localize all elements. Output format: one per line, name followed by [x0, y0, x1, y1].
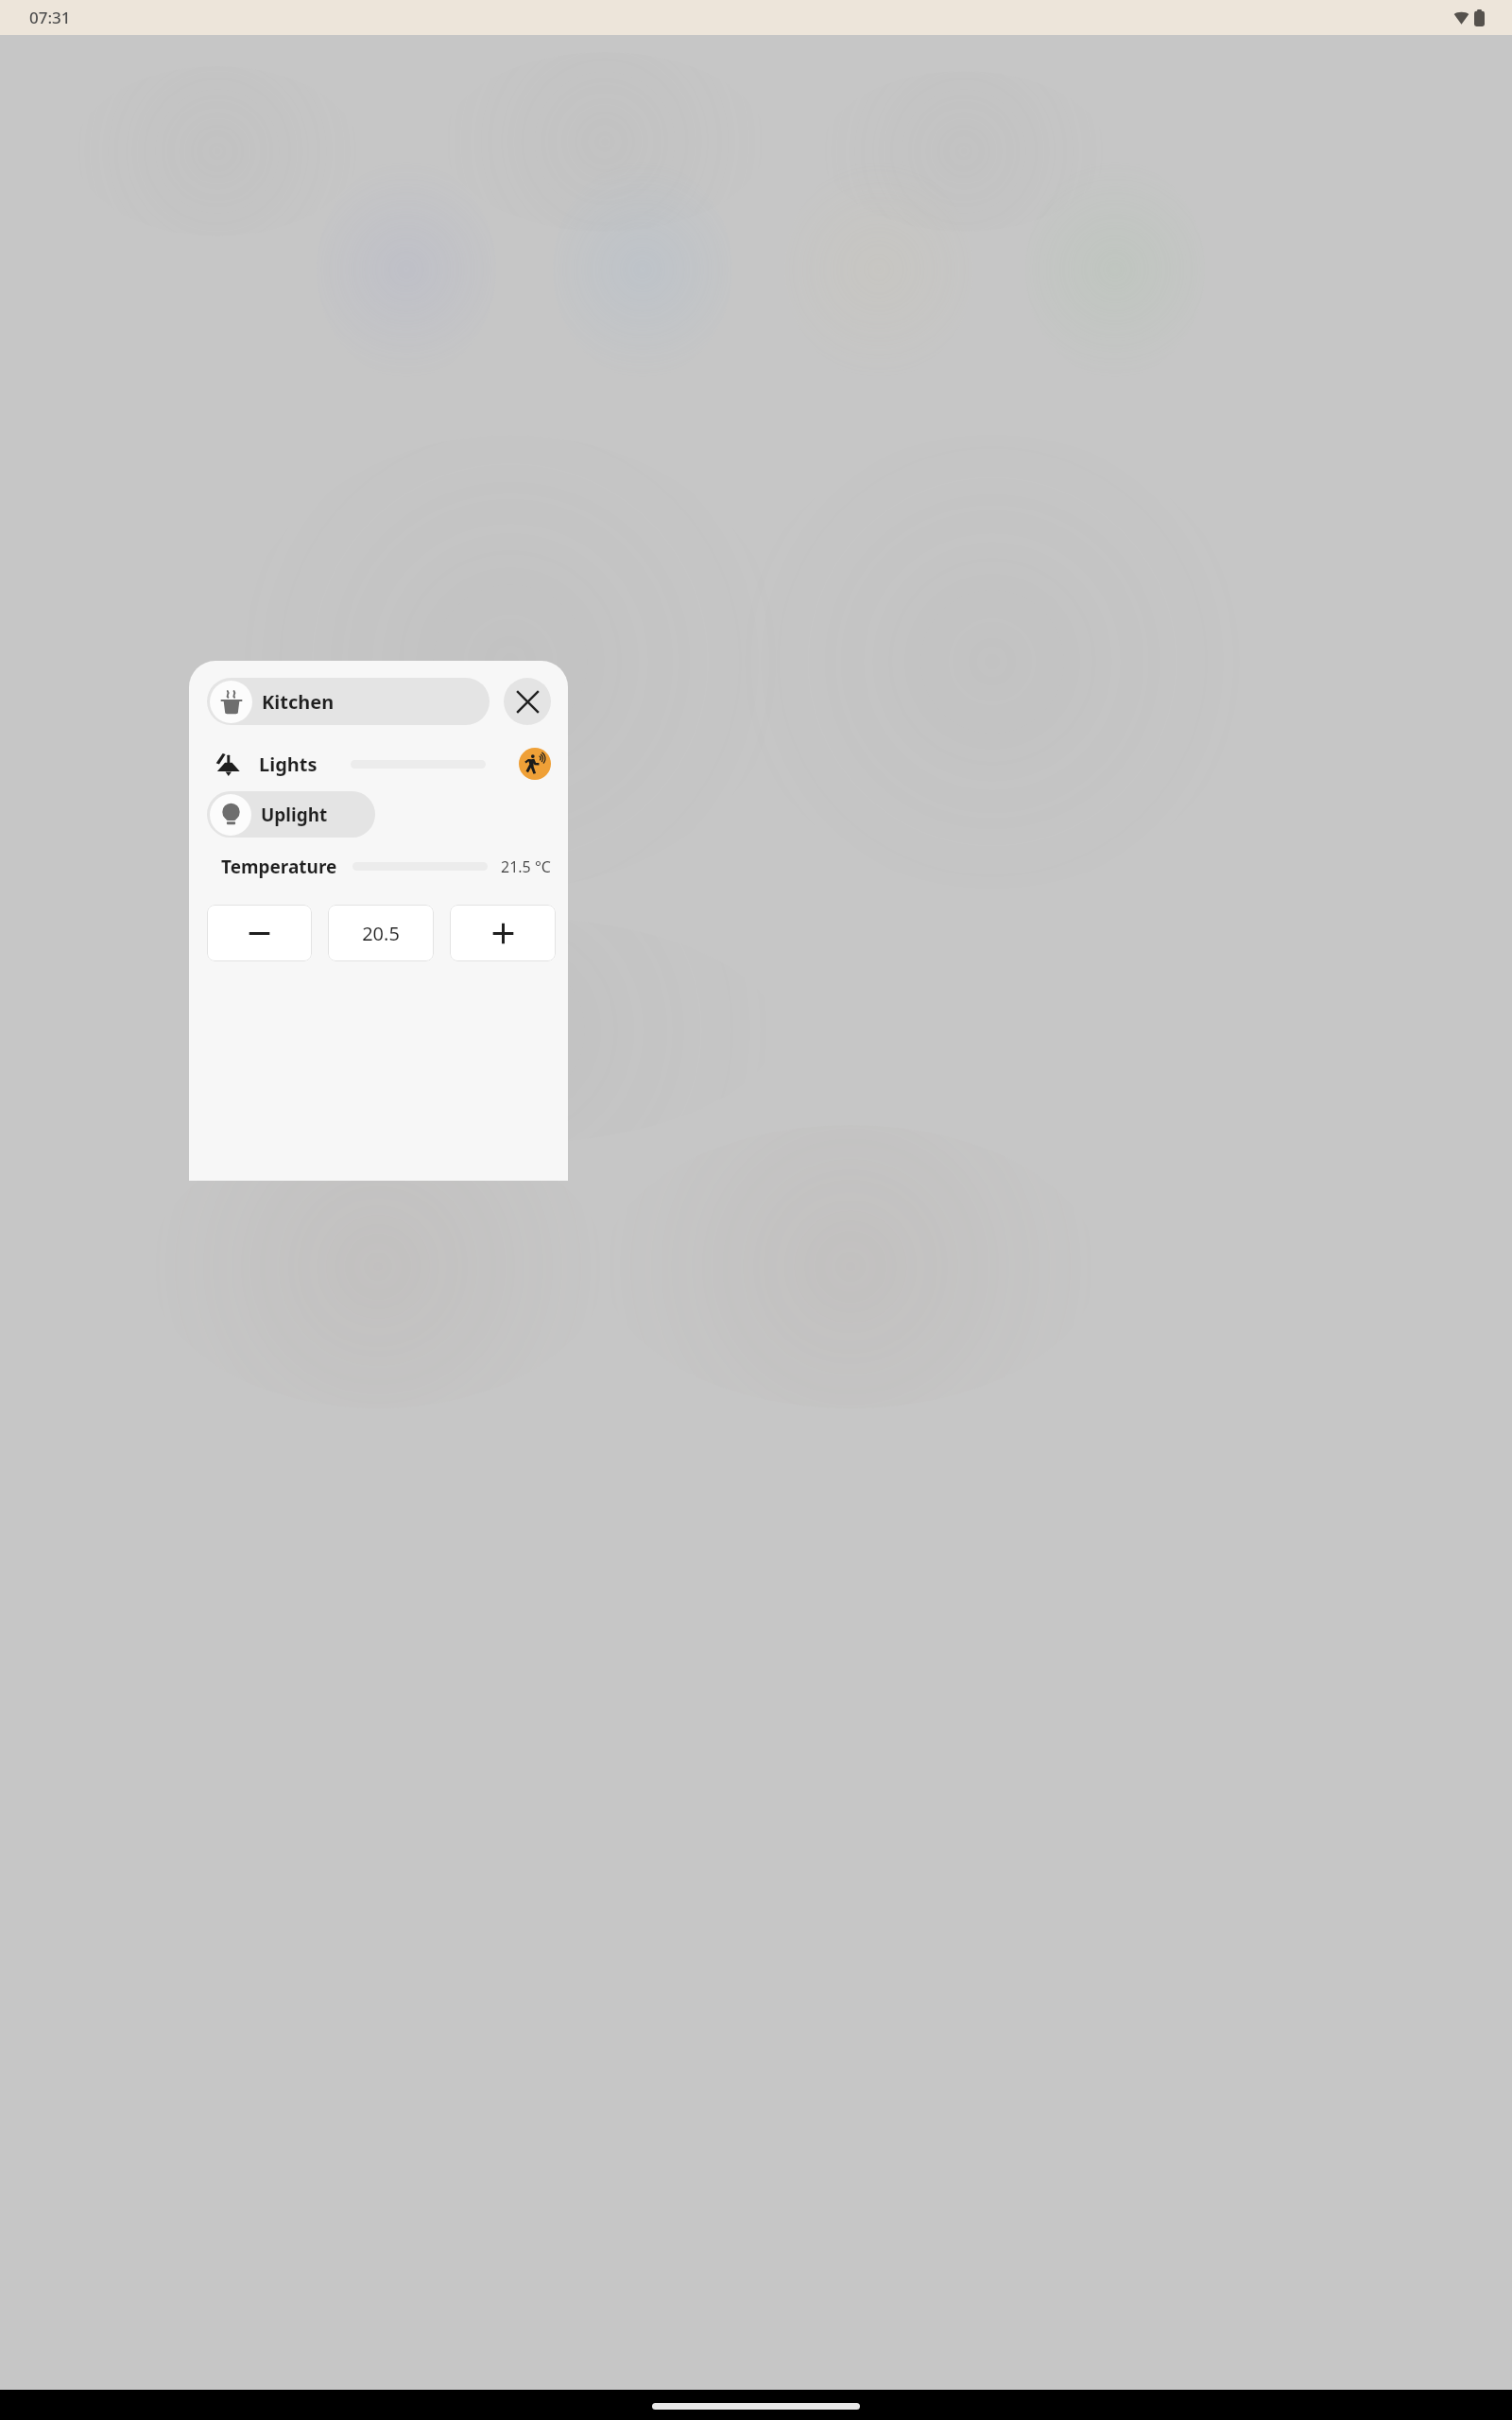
button[interactable]: Kitchen [207, 678, 490, 725]
staticText: Uplight [261, 803, 328, 827]
button[interactable]: Lights [207, 740, 551, 787]
staticText: Lights [259, 752, 318, 777]
button[interactable]: Increase temperature [450, 905, 556, 961]
staticText: 20.5 [362, 921, 400, 946]
button[interactable]: Motion sensor [519, 748, 551, 780]
staticText: Kitchen [262, 689, 335, 715]
staticText: 21.5 °C [501, 856, 551, 877]
button[interactable]: Uplight [207, 791, 375, 838]
button[interactable]: Decrease temperature [207, 905, 312, 961]
button[interactable]: 20.5 [328, 905, 434, 961]
button[interactable]: Close [504, 678, 551, 725]
staticText: 07:31 [29, 7, 71, 28]
staticText: Temperature [221, 855, 337, 879]
